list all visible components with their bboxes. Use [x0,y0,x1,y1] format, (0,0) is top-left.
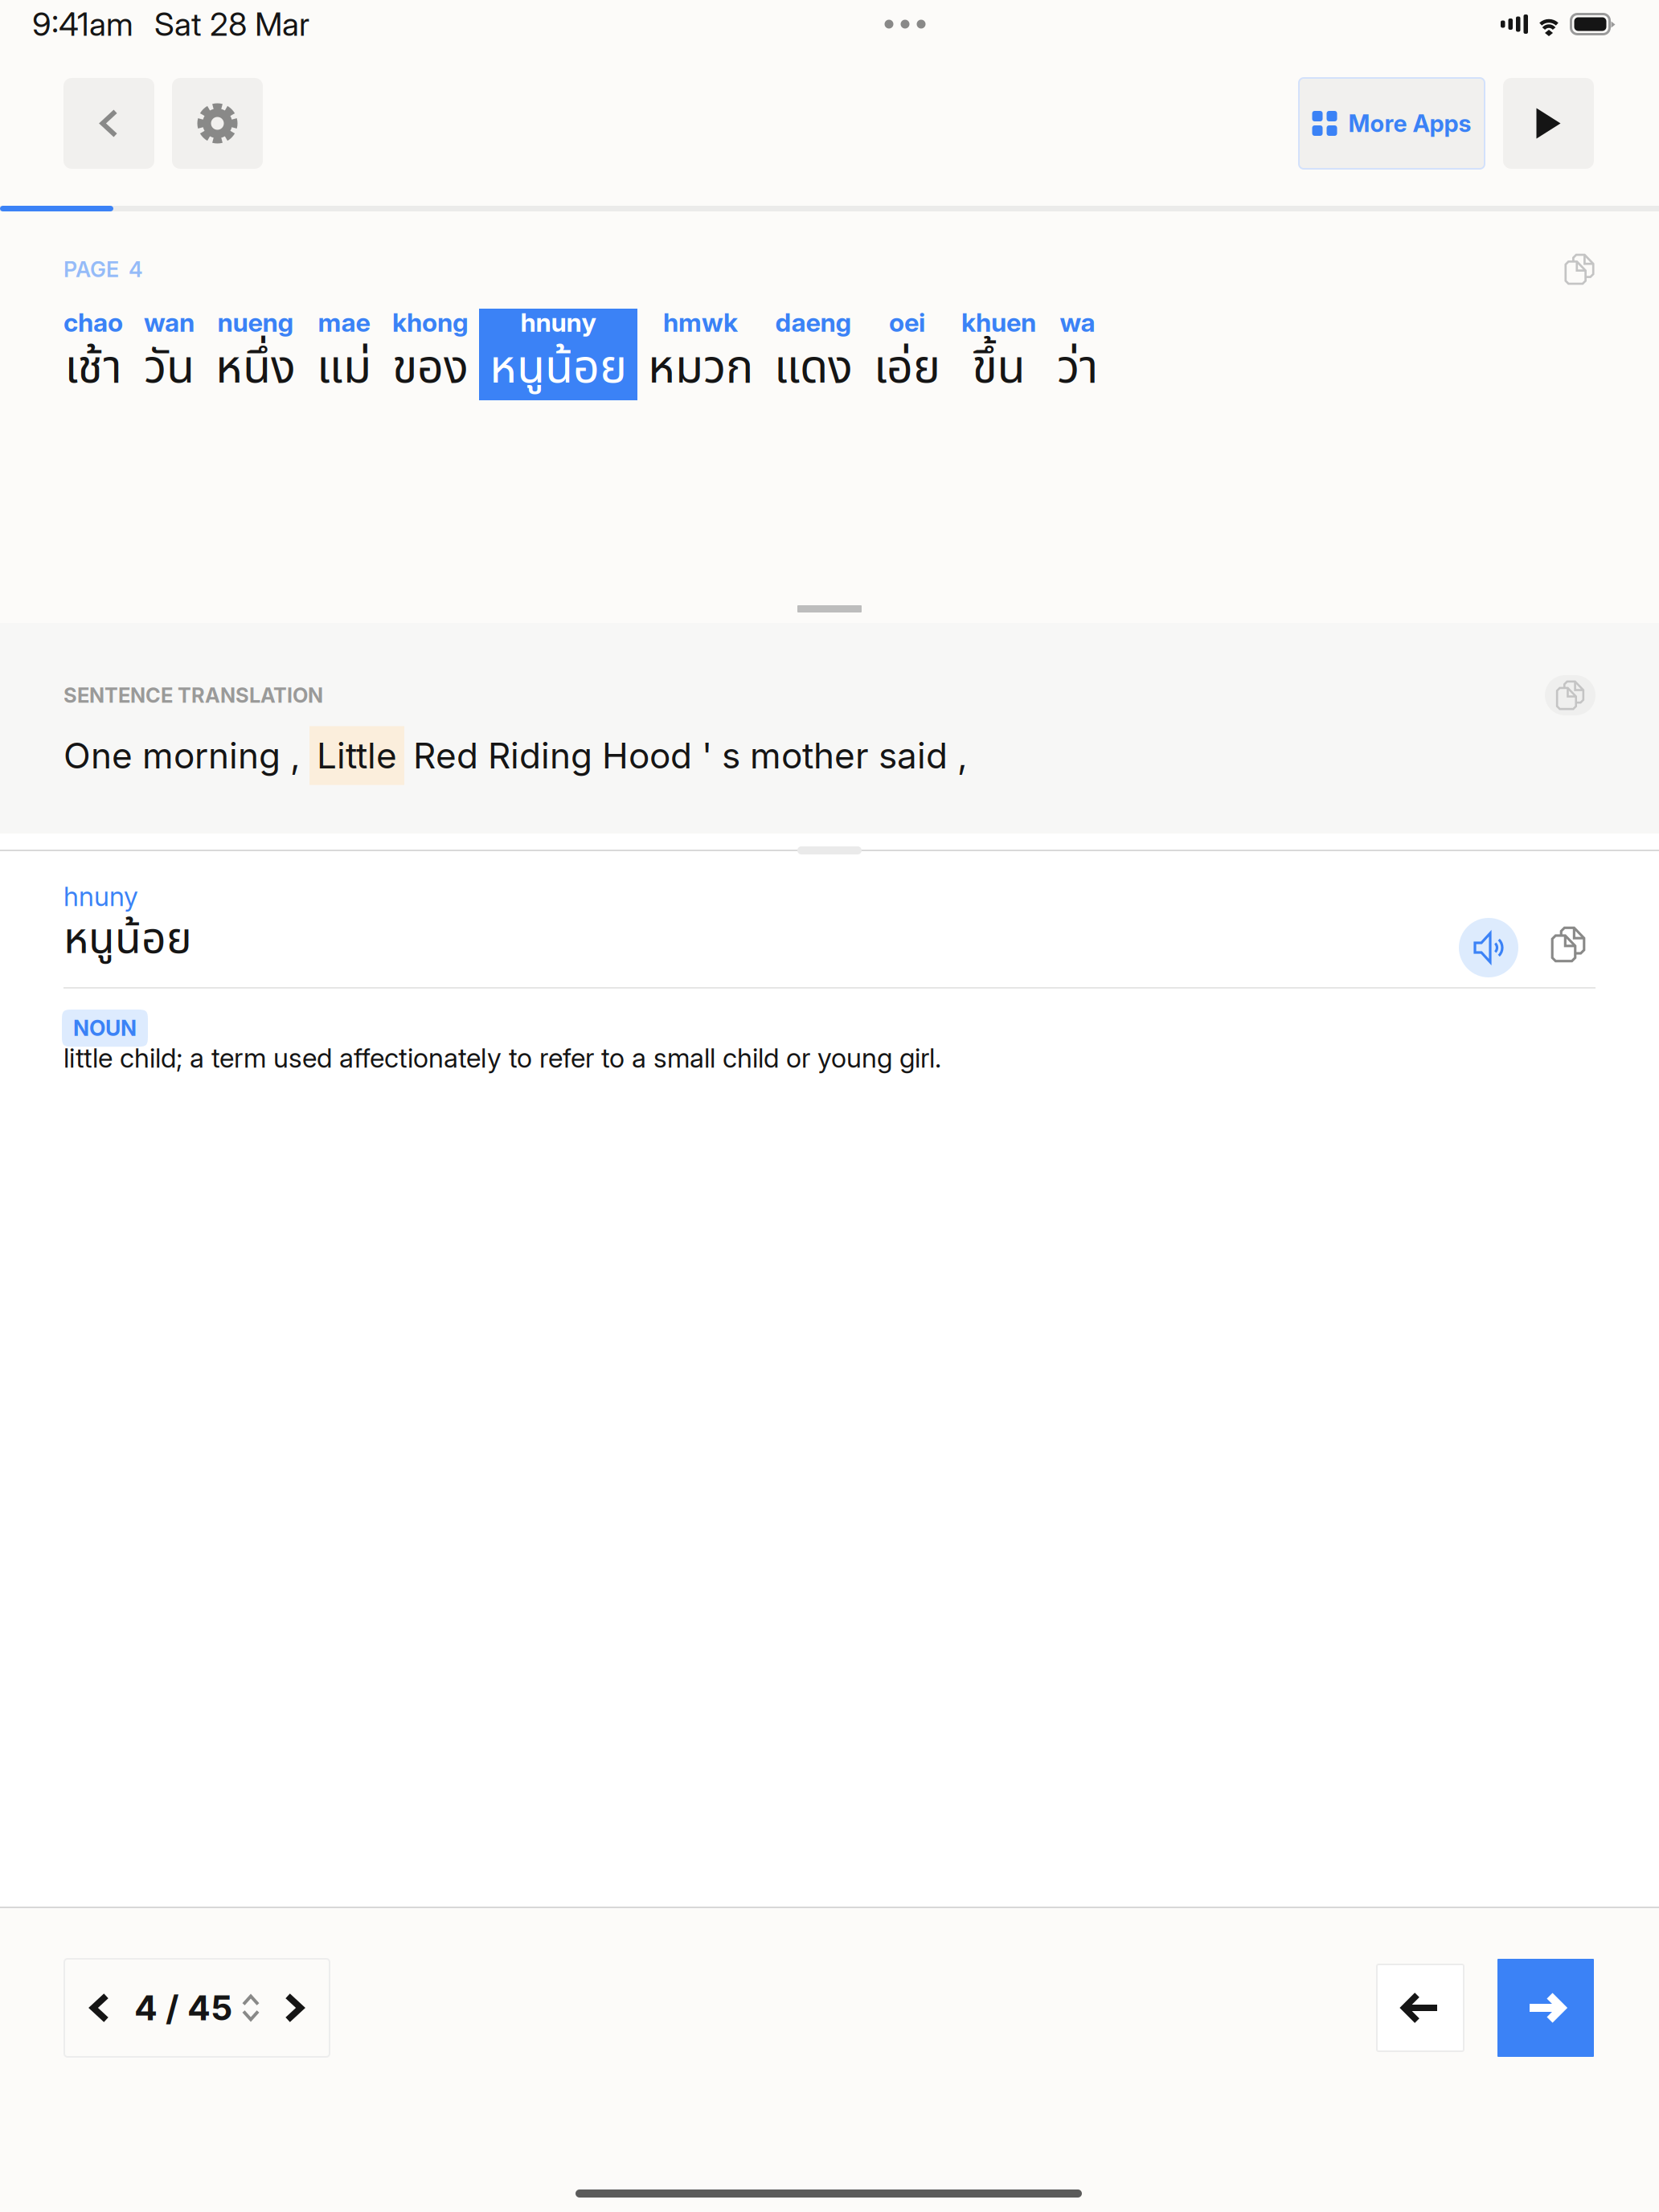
staticText: NOUN [73,1015,137,1041]
staticText: hnuny [520,307,596,338]
button[interactable]: More Apps [1299,78,1485,169]
staticText: 4 / 45 [134,1987,232,2029]
staticText: วัน [144,333,195,403]
staticText: SENTENCE TRANSLATION [63,683,323,708]
staticText: hnuny [63,880,138,912]
staticText: หนูน้อย [490,333,627,403]
button[interactable]: Copy sentence [1563,253,1596,285]
staticText: nueng [217,307,294,338]
staticText: หนูน้อย [63,907,192,972]
button[interactable]: Page 4 of 45 [64,1959,330,2057]
staticText: Red Riding Hood ' s mother said , [413,734,968,777]
staticText: หนึ่ง [215,333,296,403]
button[interactable]: Settings [172,78,263,169]
button[interactable]: Copy word [1550,926,1587,963]
staticText: More Apps [1348,109,1471,138]
staticText: 9:41am [32,5,133,44]
staticText: khuen [961,307,1036,338]
staticText: chao [63,307,123,338]
staticText: little child; a term used affectionately… [63,1042,941,1074]
staticText: PAGE 4 [63,256,143,282]
staticText: wan [144,307,195,338]
staticText: เอ่ย [874,333,940,403]
button[interactable]: Back [63,78,154,169]
staticText: ขึ้น [972,333,1025,403]
button[interactable]: Play pronunciation [1459,918,1518,977]
staticText: daeng [775,307,852,338]
staticText: ของ [392,333,469,403]
staticText: ว่า [1057,333,1098,403]
staticText: แม่ [317,333,371,403]
staticText: แดง [774,333,853,403]
button[interactable]: Next [1497,1959,1594,2057]
staticText: หมวก [648,333,753,403]
staticText: One morning , [63,734,301,777]
staticText: wa [1060,307,1095,338]
staticText: เช้า [65,333,122,403]
staticText: Sat 28 Mar [154,5,309,44]
staticText: oei [889,307,925,338]
staticText: Little [317,734,397,777]
staticText: khong [392,307,469,338]
staticText: mae [318,307,370,338]
staticText: hmwk [663,307,738,338]
button[interactable]: Copy translation [1545,675,1596,715]
button[interactable]: Play [1503,78,1594,169]
button[interactable]: Previous [1377,1964,1464,2051]
